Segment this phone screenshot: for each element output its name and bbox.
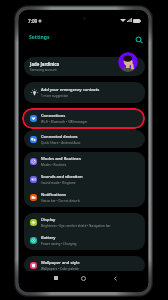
button[interactable]: Back [109, 272, 121, 284]
staticText: Wallpaper and style [41, 260, 80, 266]
staticText: Settings [29, 34, 50, 41]
staticText: Sound mode • Ringtone [41, 181, 76, 185]
button[interactable]: Modes and Routines [24, 152, 145, 170]
staticText: Quick Share • Android Auto [41, 141, 81, 145]
button[interactable]: Add your emergency contacts [24, 82, 145, 103]
button[interactable]: Sounds and vibration [24, 170, 145, 188]
staticText: Battery [41, 235, 56, 241]
button[interactable]: Notifications [24, 188, 145, 206]
staticText: Jade Jardinico [30, 61, 60, 67]
staticText: Add your emergency contacts [41, 87, 100, 93]
staticText: Display [41, 217, 56, 223]
staticText: Wi-Fi • Bluetooth • SIM manager [41, 120, 88, 124]
button[interactable]: Battery [24, 231, 145, 249]
staticText: Notifications [41, 192, 66, 198]
button[interactable]: Wallpaper and style [24, 256, 145, 274]
staticText: Wallpapers • Color palette [41, 267, 79, 271]
staticText: Power saving • Charging [41, 242, 77, 246]
button[interactable]: Jade Jardinico [24, 57, 145, 76]
button[interactable]: Connections [24, 109, 145, 127]
staticText: Modes • Routines [41, 163, 67, 167]
staticText: Connections [41, 113, 66, 119]
staticText: 7:09 [28, 18, 38, 24]
button[interactable]: Search [133, 34, 145, 46]
button[interactable]: Connected devices [24, 130, 145, 148]
staticText: Brightness • Eye comfort shield • Naviga… [41, 224, 111, 228]
button[interactable]: Recents [50, 272, 62, 284]
staticText: Samsung account [30, 68, 57, 72]
staticText: Sounds and vibration [41, 174, 83, 180]
staticText: Modes and Routines [41, 156, 81, 162]
button[interactable]: Display [24, 213, 145, 231]
button[interactable]: Home [77, 272, 89, 284]
staticText: Connected devices [41, 134, 78, 140]
staticText: Status bar • Do not disturb [41, 199, 80, 203]
staticText: 1 more suggestion [41, 94, 69, 98]
